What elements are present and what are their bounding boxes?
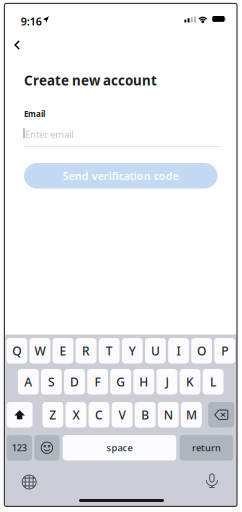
- staticText: A: [24, 374, 32, 390]
- button[interactable]: D: [64, 369, 85, 394]
- button[interactable]: Shift: [7, 402, 33, 427]
- staticText: return: [192, 442, 221, 454]
- button[interactable]: Emoji keyboard: [34, 435, 59, 460]
- staticText: K: [186, 374, 194, 390]
- button[interactable]: J: [156, 369, 177, 394]
- button[interactable]: C: [89, 402, 109, 427]
- staticText: Enter email: [25, 128, 73, 140]
- button[interactable]: R: [76, 338, 96, 363]
- button[interactable]: Z: [42, 402, 63, 427]
- staticText: I: [176, 343, 180, 359]
- button[interactable]: 123: [7, 435, 32, 460]
- button[interactable]: K: [180, 369, 200, 394]
- button[interactable]: N: [158, 402, 179, 427]
- staticText: V: [119, 407, 126, 423]
- staticText: J: [165, 374, 168, 390]
- button[interactable]: Q: [6, 338, 27, 363]
- button[interactable]: O: [191, 338, 212, 363]
- button[interactable]: Dictation: [201, 469, 223, 491]
- button[interactable]: V: [112, 402, 132, 427]
- staticText: T: [106, 343, 113, 359]
- button[interactable]: S: [41, 369, 62, 394]
- button[interactable]: B: [135, 402, 156, 427]
- button[interactable]: T: [99, 338, 120, 363]
- staticText: X: [72, 407, 79, 423]
- staticText: Email: [24, 108, 45, 119]
- staticText: 9:16: [21, 14, 42, 28]
- staticText: Q: [12, 343, 21, 359]
- staticText: Send verification code: [63, 169, 179, 183]
- button[interactable]: M: [181, 402, 202, 427]
- button[interactable]: Delete: [208, 402, 234, 427]
- staticText: M: [186, 407, 197, 423]
- staticText: D: [70, 374, 79, 390]
- button[interactable]: Next keyboard: [18, 471, 40, 493]
- button[interactable]: F: [87, 369, 108, 394]
- button[interactable]: U: [145, 338, 166, 363]
- staticText: 123: [12, 442, 27, 454]
- button[interactable]: space: [63, 435, 176, 460]
- staticText: E: [59, 343, 66, 359]
- button[interactable]: I: [168, 338, 189, 363]
- staticText: N: [164, 407, 173, 423]
- staticText: O: [197, 343, 206, 359]
- staticText: L: [210, 374, 216, 390]
- staticText: space: [106, 442, 132, 454]
- staticText: S: [48, 374, 55, 390]
- staticText: W: [34, 343, 45, 359]
- staticText: B: [141, 407, 149, 423]
- button[interactable]: Y: [122, 338, 143, 363]
- button[interactable]: H: [133, 369, 154, 394]
- button[interactable]: return: [180, 435, 233, 460]
- staticText: U: [151, 343, 160, 359]
- button[interactable]: X: [65, 402, 86, 427]
- staticText: C: [95, 407, 103, 423]
- staticText: F: [95, 374, 101, 390]
- button[interactable]: G: [110, 369, 131, 394]
- button[interactable]: W: [29, 338, 50, 363]
- staticText: G: [116, 374, 125, 390]
- staticText: Z: [49, 407, 56, 423]
- button[interactable]: E: [53, 338, 73, 363]
- button[interactable]: A: [18, 369, 39, 394]
- button[interactable]: Send verification code: [24, 163, 217, 189]
- staticText: Create new account: [24, 71, 157, 89]
- button[interactable]: L: [203, 369, 223, 394]
- staticText: Y: [129, 343, 136, 359]
- button[interactable]: P: [214, 338, 235, 363]
- button[interactable]: Back: [6, 34, 28, 56]
- staticText: R: [82, 343, 90, 359]
- staticText: H: [139, 374, 148, 390]
- staticText: P: [221, 343, 228, 359]
